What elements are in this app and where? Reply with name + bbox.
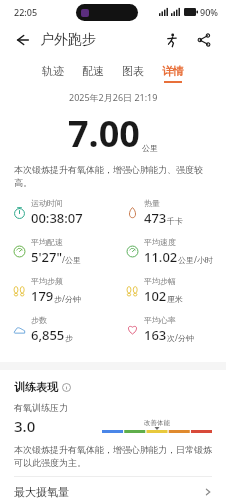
staticText: 图表 bbox=[122, 64, 144, 78]
button[interactable]: Share bbox=[192, 28, 216, 52]
staticText: 公里/小时 bbox=[178, 254, 213, 265]
staticText: 次/分钟 bbox=[167, 332, 194, 343]
staticText: 本次锻炼提升有氧体能，增强心肺能力，日常锻炼可以此强度为主。 bbox=[14, 444, 212, 468]
button[interactable]: 详情 bbox=[153, 62, 193, 85]
staticText: 163 bbox=[144, 326, 167, 344]
staticText: 本次锻炼提升有氧体能，增强心肺能力、强度较高。 bbox=[14, 164, 212, 188]
staticText: 平均步频 bbox=[31, 276, 63, 286]
staticText: 户外跑步 bbox=[40, 31, 96, 49]
staticText: 步 bbox=[65, 333, 73, 343]
button[interactable]: 轨迹 bbox=[33, 62, 73, 85]
staticText: 热量 bbox=[144, 198, 160, 208]
staticText: 最大摄氧量 bbox=[14, 485, 69, 499]
staticText: 6,855 bbox=[31, 326, 65, 344]
button[interactable]: 平均心率 bbox=[126, 315, 226, 344]
button[interactable]: 步数 bbox=[13, 315, 113, 344]
staticText: 00:38:07 bbox=[31, 209, 83, 227]
staticText: 2025年2月26日 21:19 bbox=[69, 91, 158, 103]
button[interactable]: 平均步幅 bbox=[126, 276, 226, 305]
staticText: 详情 bbox=[162, 64, 184, 78]
button[interactable]: 图表 bbox=[113, 62, 153, 85]
staticText: 厘米 bbox=[167, 294, 183, 304]
staticText: 训练表现 bbox=[14, 380, 58, 394]
staticText: 平均步幅 bbox=[144, 276, 176, 286]
button[interactable]: 平均配速 bbox=[13, 237, 113, 266]
button[interactable]: Running bbox=[160, 28, 184, 52]
staticText: 步数 bbox=[31, 315, 47, 325]
staticText: 平均速度 bbox=[144, 237, 176, 247]
staticText: 配速 bbox=[82, 64, 104, 78]
button[interactable]: Info bbox=[61, 382, 71, 392]
staticText: 平均配速 bbox=[31, 237, 63, 247]
button[interactable]: Back bbox=[10, 28, 34, 52]
staticText: 473 bbox=[144, 209, 167, 227]
button[interactable]: 平均速度 bbox=[126, 237, 226, 266]
staticText: 公里 bbox=[142, 143, 158, 153]
staticText: 22:05 bbox=[14, 6, 38, 18]
staticText: 3.0 bbox=[14, 416, 36, 436]
staticText: 90% bbox=[200, 6, 218, 18]
staticText: 11.02 bbox=[144, 248, 178, 266]
staticText: /公里 bbox=[62, 254, 81, 265]
button[interactable]: 平均步频 bbox=[13, 276, 113, 305]
button[interactable]: 配速 bbox=[73, 62, 113, 85]
staticText: 轨迹 bbox=[42, 64, 64, 78]
staticText: 平均心率 bbox=[144, 315, 176, 325]
button[interactable]: 运动时间 bbox=[13, 198, 113, 227]
staticText: 179 bbox=[31, 287, 54, 305]
button[interactable]: 热量 bbox=[126, 198, 226, 227]
staticText: 102 bbox=[144, 287, 167, 305]
staticText: 运动时间 bbox=[31, 198, 63, 208]
staticText: 改善体能 bbox=[144, 419, 170, 427]
button[interactable]: 最大摄氧量 bbox=[14, 485, 212, 499]
staticText: 步/分钟 bbox=[54, 293, 81, 304]
staticText: 千卡 bbox=[167, 216, 183, 226]
staticText: 7.00 bbox=[68, 109, 140, 158]
staticText: 有氧训练压力 bbox=[14, 402, 68, 413]
staticText: 5'27" bbox=[31, 248, 62, 266]
